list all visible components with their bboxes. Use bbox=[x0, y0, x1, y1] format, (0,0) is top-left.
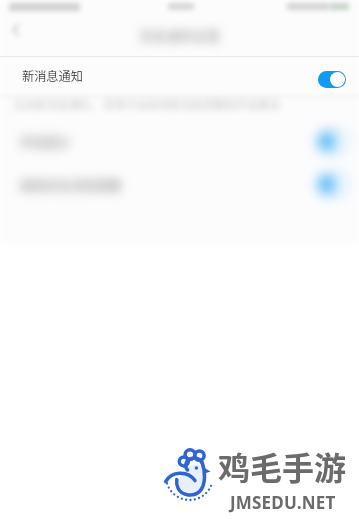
staticText: 声音提示 bbox=[20, 132, 71, 150]
button[interactable]: Toggle notification bbox=[319, 176, 347, 193]
button[interactable]: 接收好友消息提醒 bbox=[0, 163, 359, 205]
staticText: 新消息通知 bbox=[22, 67, 83, 85]
staticText: 鸡毛手游 bbox=[218, 443, 347, 489]
button[interactable]: Toggle notification bbox=[318, 71, 346, 88]
button[interactable]: 声音提示 bbox=[0, 120, 359, 162]
staticText: JMSEDU.NET bbox=[230, 491, 336, 514]
staticText: 消息通知设置 bbox=[139, 25, 220, 45]
staticText: 接收好友消息提醒 bbox=[20, 175, 121, 193]
staticText: 关闭新消息通知， 您将不会收到新消息提醒和声音震动 bbox=[13, 96, 280, 112]
button[interactable]: Toggle notification bbox=[319, 133, 347, 150]
button[interactable]: 新消息通知 bbox=[0, 57, 359, 97]
button[interactable]: Back bbox=[3, 17, 29, 43]
